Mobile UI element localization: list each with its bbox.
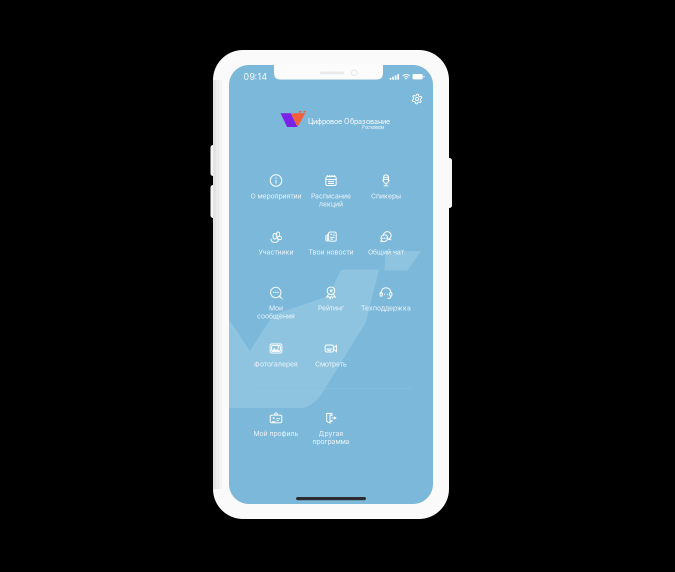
staticText: Цифровое Образование [308,117,390,126]
button[interactable]: О мероприятии [248,172,303,216]
staticText: Участники [258,248,293,256]
button[interactable]: Общий чат [358,228,413,272]
button[interactable]: Участники [248,228,303,272]
staticText: лекций [319,200,343,208]
staticText: сообщения [257,312,295,320]
staticText: О мероприятии [250,192,301,200]
button[interactable]: Расписание [303,172,358,216]
button[interactable]: Смотреть [303,340,358,384]
staticText: Техподдержка [361,304,411,312]
staticText: Спикеры [371,192,401,200]
staticText: Мои [269,304,283,312]
button[interactable]: Мой профиль [248,410,303,454]
staticText: Мой профиль [253,429,298,438]
button[interactable]: Рейтинг [303,284,358,328]
button[interactable]: Другая [303,410,358,454]
button[interactable]: Спикеры [358,172,413,216]
staticText: программа [312,437,349,446]
staticText: 09:14 [243,71,267,82]
staticText: Рейтинг [318,304,344,312]
staticText: Фотогалерея [254,360,298,368]
button[interactable]: Фотогалерея [248,340,303,384]
staticText: Общий чат [368,248,404,256]
staticText: Ростелеком [362,125,384,130]
button[interactable]: Settings [406,88,428,110]
staticText: Расписание [311,192,351,200]
button[interactable]: Твои новости [303,228,358,272]
staticText: Смотреть [315,360,347,368]
button[interactable]: Техподдержка [358,284,413,328]
staticText: Твои новости [308,248,353,256]
staticText: Другая [318,429,343,438]
button[interactable]: Мои [248,284,303,328]
